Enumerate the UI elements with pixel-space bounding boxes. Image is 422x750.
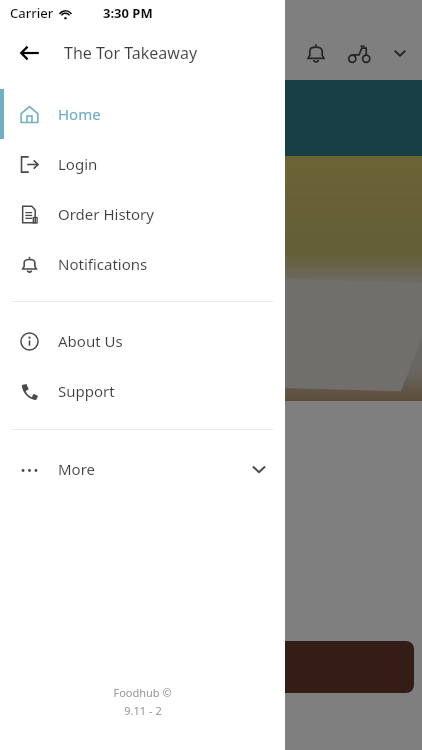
button[interactable]: 9.00 [0,591,422,635]
staticText: ADD [75,428,103,446]
button[interactable]: ADD [44,466,134,496]
button[interactable]: Delivery [344,38,374,68]
button[interactable]: 3.50 [0,503,422,547]
button[interactable]: Support [0,366,285,416]
staticText: Foodhub © [113,685,172,700]
staticText: About Us [58,331,123,351]
button[interactable]: Login [0,139,285,189]
button[interactable] [6,641,414,693]
button[interactable]: Home [0,89,285,139]
staticText: More [58,459,96,479]
button[interactable]: 7.00 [0,415,422,459]
button[interactable]: Order History [0,189,285,239]
button[interactable]: More [0,444,285,494]
button[interactable]: Notifications [0,239,285,289]
button[interactable]: Expand [388,41,412,65]
staticText: 3:30 PM [103,4,153,22]
staticText: Login [58,154,98,174]
staticText: ADD [75,472,103,490]
staticText: at 16:00. You can pre-order now for [8,120,251,139]
button[interactable]: About Us [0,316,285,366]
staticText: Order History [58,204,154,224]
staticText: 9.11 - 2 [124,703,162,718]
staticText: The Tor Takeaway [64,42,198,64]
staticText: 7.00 [4,428,32,447]
button[interactable]: Notifications [302,39,330,67]
button[interactable]: Back [14,37,46,69]
staticText: The restaurant is closed and will open [8,97,272,116]
staticText: Home [58,104,101,124]
button[interactable]: ADD [44,422,134,452]
staticText: Support [58,381,115,401]
staticText: Notifications [58,254,148,274]
button[interactable]: 4.50 [0,459,422,503]
button[interactable]: 6.00 [0,547,422,591]
staticText: Carrier [10,4,54,22]
